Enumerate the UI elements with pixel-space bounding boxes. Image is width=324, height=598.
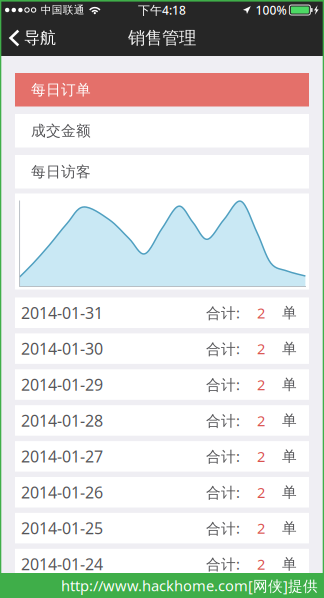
staticText: 2 bbox=[257, 411, 265, 430]
staticText: 成交金额 bbox=[31, 122, 91, 140]
staticText: 2 bbox=[257, 375, 265, 394]
staticText: 单 bbox=[282, 483, 297, 501]
staticText: 100% bbox=[255, 2, 286, 18]
staticText: 合计: bbox=[206, 411, 240, 430]
staticText: 单 bbox=[282, 555, 297, 573]
button[interactable]: 成交金额 bbox=[15, 114, 309, 147]
staticText: 单 bbox=[282, 375, 297, 393]
staticText: 合计: bbox=[206, 375, 240, 394]
staticText: 2014-01-31 bbox=[21, 302, 103, 323]
button[interactable]: 每日订单 bbox=[15, 73, 309, 106]
button[interactable]: 2014-01-30 bbox=[15, 333, 309, 364]
button[interactable]: 2014-01-24 bbox=[15, 549, 309, 579]
staticText: 合计: bbox=[206, 482, 240, 502]
staticText: 2014-01-27 bbox=[21, 446, 103, 467]
staticText: 2014-01-28 bbox=[21, 410, 103, 431]
button[interactable]: 导航 bbox=[0, 20, 65, 56]
staticText: 2014-01-24 bbox=[21, 553, 103, 575]
staticText: 合计: bbox=[206, 447, 240, 466]
button[interactable]: 2014-01-29 bbox=[15, 369, 309, 400]
button[interactable]: 2014-01-26 bbox=[15, 477, 309, 507]
staticText: 下午4:18 bbox=[138, 2, 186, 18]
staticText: 合计: bbox=[206, 303, 240, 322]
staticText: 合计: bbox=[206, 554, 240, 574]
staticText: 2014-01-25 bbox=[21, 517, 103, 539]
staticText: 2 bbox=[257, 303, 265, 322]
staticText: 中国联通 bbox=[41, 3, 85, 16]
staticText: 2014-01-30 bbox=[21, 338, 103, 359]
staticText: http://www.hackhome.com[网侠]提供 bbox=[61, 576, 318, 595]
button[interactable]: 2014-01-28 bbox=[15, 405, 309, 436]
staticText: 单 bbox=[282, 411, 297, 429]
staticText: 2 bbox=[257, 554, 265, 574]
staticText: 2014-01-26 bbox=[21, 482, 103, 503]
staticText: 每日访客 bbox=[31, 163, 91, 181]
staticText: 2 bbox=[257, 518, 265, 538]
staticText: 单 bbox=[282, 304, 297, 322]
staticText: 2 bbox=[257, 339, 265, 358]
staticText: 单 bbox=[282, 519, 297, 537]
staticText: 2014-01-29 bbox=[21, 374, 103, 395]
button[interactable]: 2014-01-31 bbox=[15, 297, 309, 328]
button[interactable]: 2014-01-25 bbox=[15, 513, 309, 543]
staticText: 销售管理 bbox=[128, 27, 196, 49]
button[interactable]: 每日访客 bbox=[15, 155, 309, 188]
staticText: 每日订单 bbox=[31, 81, 91, 99]
button[interactable]: 2014-01-27 bbox=[15, 441, 309, 472]
staticText: 导航 bbox=[24, 28, 56, 48]
staticText: 2 bbox=[257, 482, 265, 502]
staticText: 合计: bbox=[206, 518, 240, 538]
staticText: 合计: bbox=[206, 339, 240, 358]
staticText: 单 bbox=[282, 340, 297, 358]
staticText: 2 bbox=[257, 447, 265, 466]
staticText: 单 bbox=[282, 447, 297, 465]
